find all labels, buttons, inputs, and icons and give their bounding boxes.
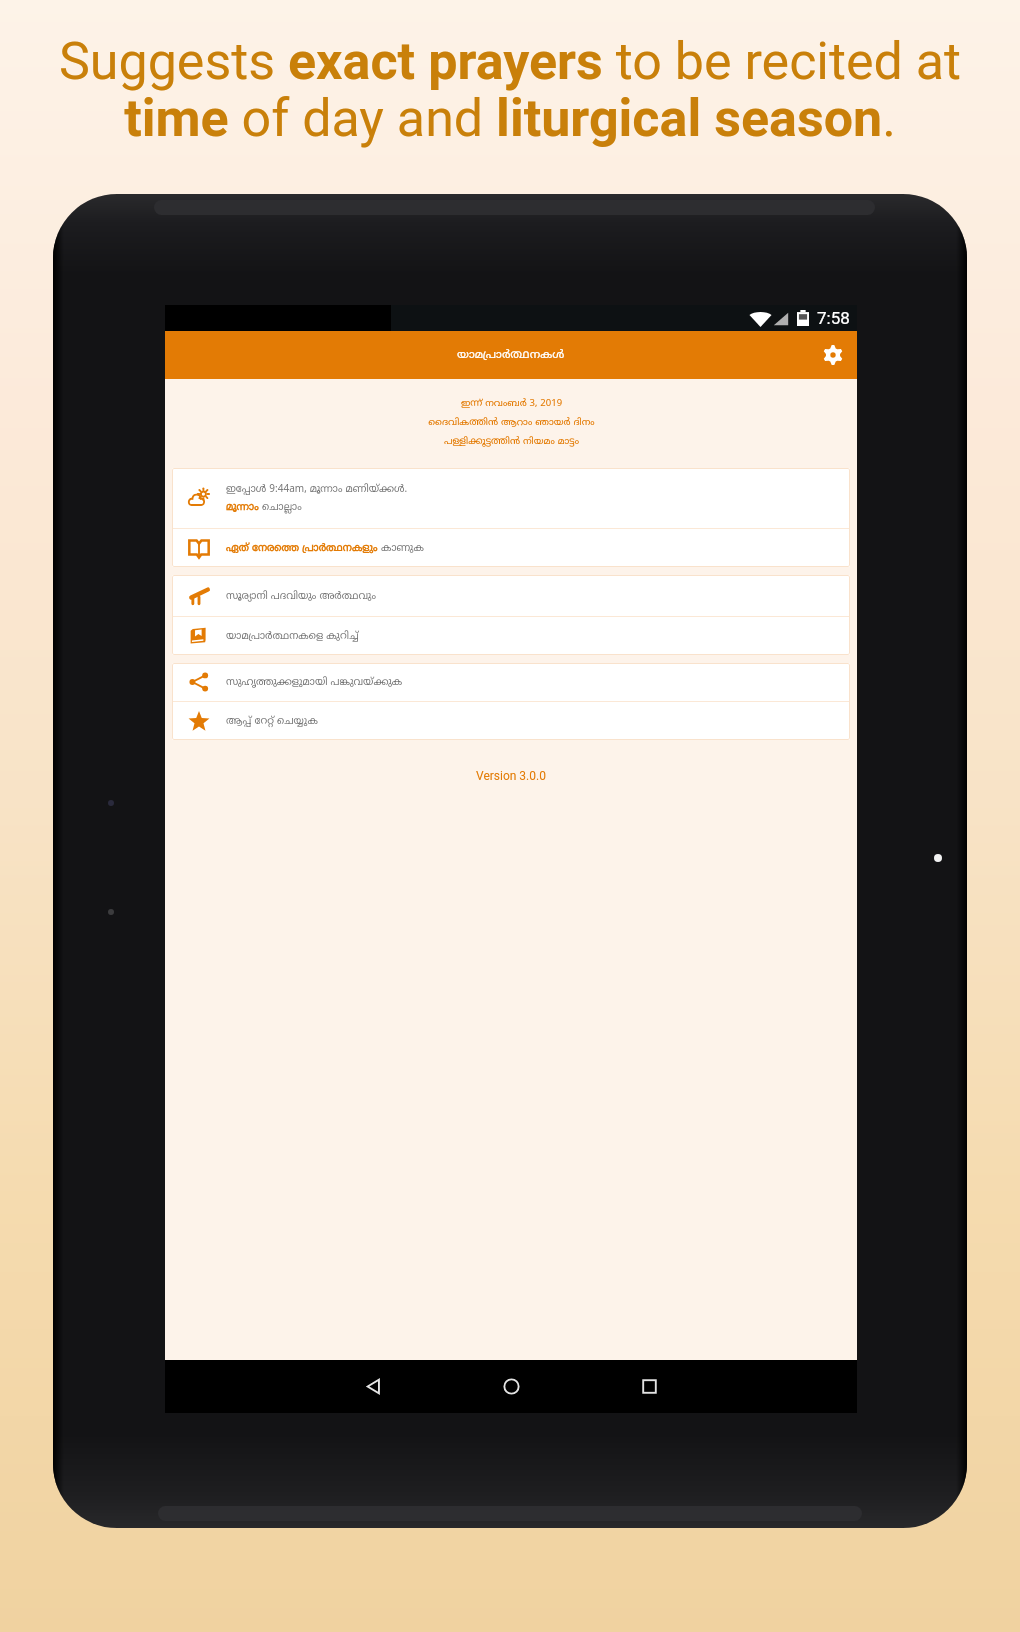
- button[interactable]: Back: [304, 1360, 442, 1413]
- staticText: യാമപ്രാർത്ഥനകൾ: [457, 348, 565, 362]
- staticText: മൂന്നാം: [226, 501, 262, 513]
- staticText: Suggests exact prayers to be recited at …: [0, 31, 1020, 149]
- staticText: യാമപ്രാർത്ഥനകളെ കുറിച്ച്: [226, 630, 359, 642]
- button[interactable]: സൂര്യാനി പദവിയും അർത്ഥവും: [172, 575, 850, 616]
- staticText: കാണുക: [381, 542, 424, 554]
- staticText: ഇപ്പോൾ 9:44am, മൂന്നാം മണിയ്ക്കൾ.: [226, 483, 408, 495]
- button[interactable]: ആപ്പ് റേറ്റ് ചെയ്യുക: [172, 702, 850, 740]
- staticText: സുഹൃത്തുക്കളുമായി പങ്കുവയ്ക്കുക: [226, 676, 403, 688]
- staticText: Version 3.0.0: [476, 769, 546, 783]
- staticText: ആപ്പ് റേറ്റ് ചെയ്യുക: [226, 715, 318, 727]
- button[interactable]: Settings: [809, 331, 857, 379]
- staticText: ഏത് നേരത്തെ പ്രാർത്ഥനകളും: [226, 542, 381, 554]
- button[interactable]: Home: [442, 1360, 580, 1413]
- button[interactable]: സുഹൃത്തുക്കളുമായി പങ്കുവയ്ക്കുക: [172, 663, 850, 701]
- staticText: 7:58: [817, 308, 850, 328]
- staticText: ഇന്ന് നവംബർ 3, 2019 ദൈവികത്തിൻ ആറാം ഞായർ…: [428, 398, 595, 448]
- staticText: ചൊല്ലാം: [262, 501, 302, 513]
- button[interactable]: Recents: [580, 1360, 718, 1413]
- button[interactable]: ഇപ്പോൾ 9:44am, മൂന്നാം മണിയ്ക്കൾ.: [172, 468, 850, 528]
- button[interactable]: ഏത് നേരത്തെ പ്രാർത്ഥനകളും: [172, 529, 850, 567]
- button[interactable]: യാമപ്രാർത്ഥനകളെ കുറിച്ച്: [172, 617, 850, 655]
- staticText: സൂര്യാനി പദവിയും അർത്ഥവും: [226, 590, 376, 602]
